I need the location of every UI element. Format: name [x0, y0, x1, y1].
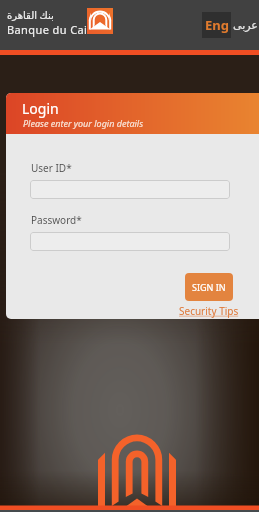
- staticText: Please enter your login details: [23, 117, 144, 129]
- button[interactable]: عربى: [231, 12, 259, 38]
- staticText: عربى: [233, 19, 258, 32]
- staticText: بنك القاهرة: [7, 8, 54, 22]
- staticText: SIGN IN: [192, 281, 226, 293]
- button[interactable]: Security Tips: [179, 304, 239, 318]
- button[interactable]: SIGN IN: [185, 273, 233, 301]
- staticText: Password*: [31, 213, 82, 227]
- staticText: Banque du Caire: [7, 22, 99, 37]
- button[interactable]: [30, 232, 230, 251]
- button[interactable]: Eng: [202, 12, 231, 38]
- button[interactable]: [30, 180, 230, 199]
- staticText: User ID*: [31, 161, 72, 175]
- staticText: Eng: [205, 16, 229, 34]
- staticText: Login: [22, 99, 59, 118]
- staticText: Security Tips: [179, 304, 239, 318]
